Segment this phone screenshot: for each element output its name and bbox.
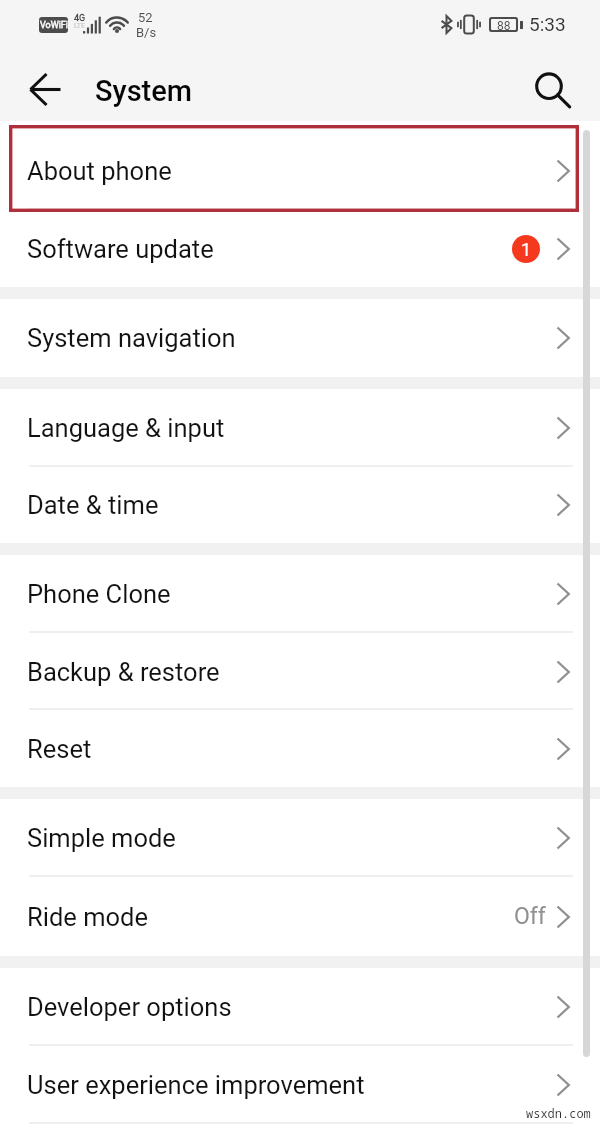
button[interactable]: Reset (0, 710, 600, 787)
button[interactable]: About phone (0, 132, 600, 210)
staticText: User experience improvement (27, 1070, 365, 1100)
staticText: 4G (74, 13, 86, 24)
button[interactable]: Software update (0, 210, 600, 287)
button[interactable]: Date & time (0, 467, 600, 543)
staticText: System navigation (27, 323, 236, 353)
staticText: About phone (27, 156, 172, 186)
staticText: B/s (136, 25, 157, 40)
button[interactable]: Developer options (0, 968, 600, 1046)
button[interactable]: Search (520, 56, 586, 121)
button[interactable]: System navigation (0, 299, 600, 377)
button[interactable]: Backup & restore (0, 633, 600, 710)
staticText: System (95, 74, 193, 108)
button[interactable]: Ride mode (0, 877, 600, 956)
button[interactable]: Phone Clone (0, 555, 600, 633)
button[interactable]: Back (14, 56, 78, 121)
staticText: Date & time (27, 490, 159, 520)
staticText: 88 (497, 19, 511, 30)
button[interactable]: Language & input (0, 389, 600, 467)
staticText: LTE (74, 22, 85, 30)
staticText: Off (514, 903, 546, 930)
staticText: Backup & restore (27, 657, 220, 687)
staticText: VoWiFi (40, 20, 68, 31)
staticText: wsxdn.com (526, 1105, 591, 1121)
staticText: Software update (27, 234, 214, 264)
staticText: 5:33 (529, 13, 566, 35)
staticText: Ride mode (27, 902, 148, 932)
button[interactable]: User experience improvement (0, 1046, 600, 1124)
staticText: Developer options (27, 992, 232, 1022)
staticText: 1 (521, 239, 532, 260)
staticText: 52 (138, 10, 153, 25)
staticText: Reset (27, 734, 92, 764)
staticText: Phone Clone (27, 579, 171, 609)
staticText: Language & input (27, 413, 225, 443)
button[interactable]: Simple mode (0, 799, 600, 877)
staticText: Simple mode (27, 823, 176, 853)
